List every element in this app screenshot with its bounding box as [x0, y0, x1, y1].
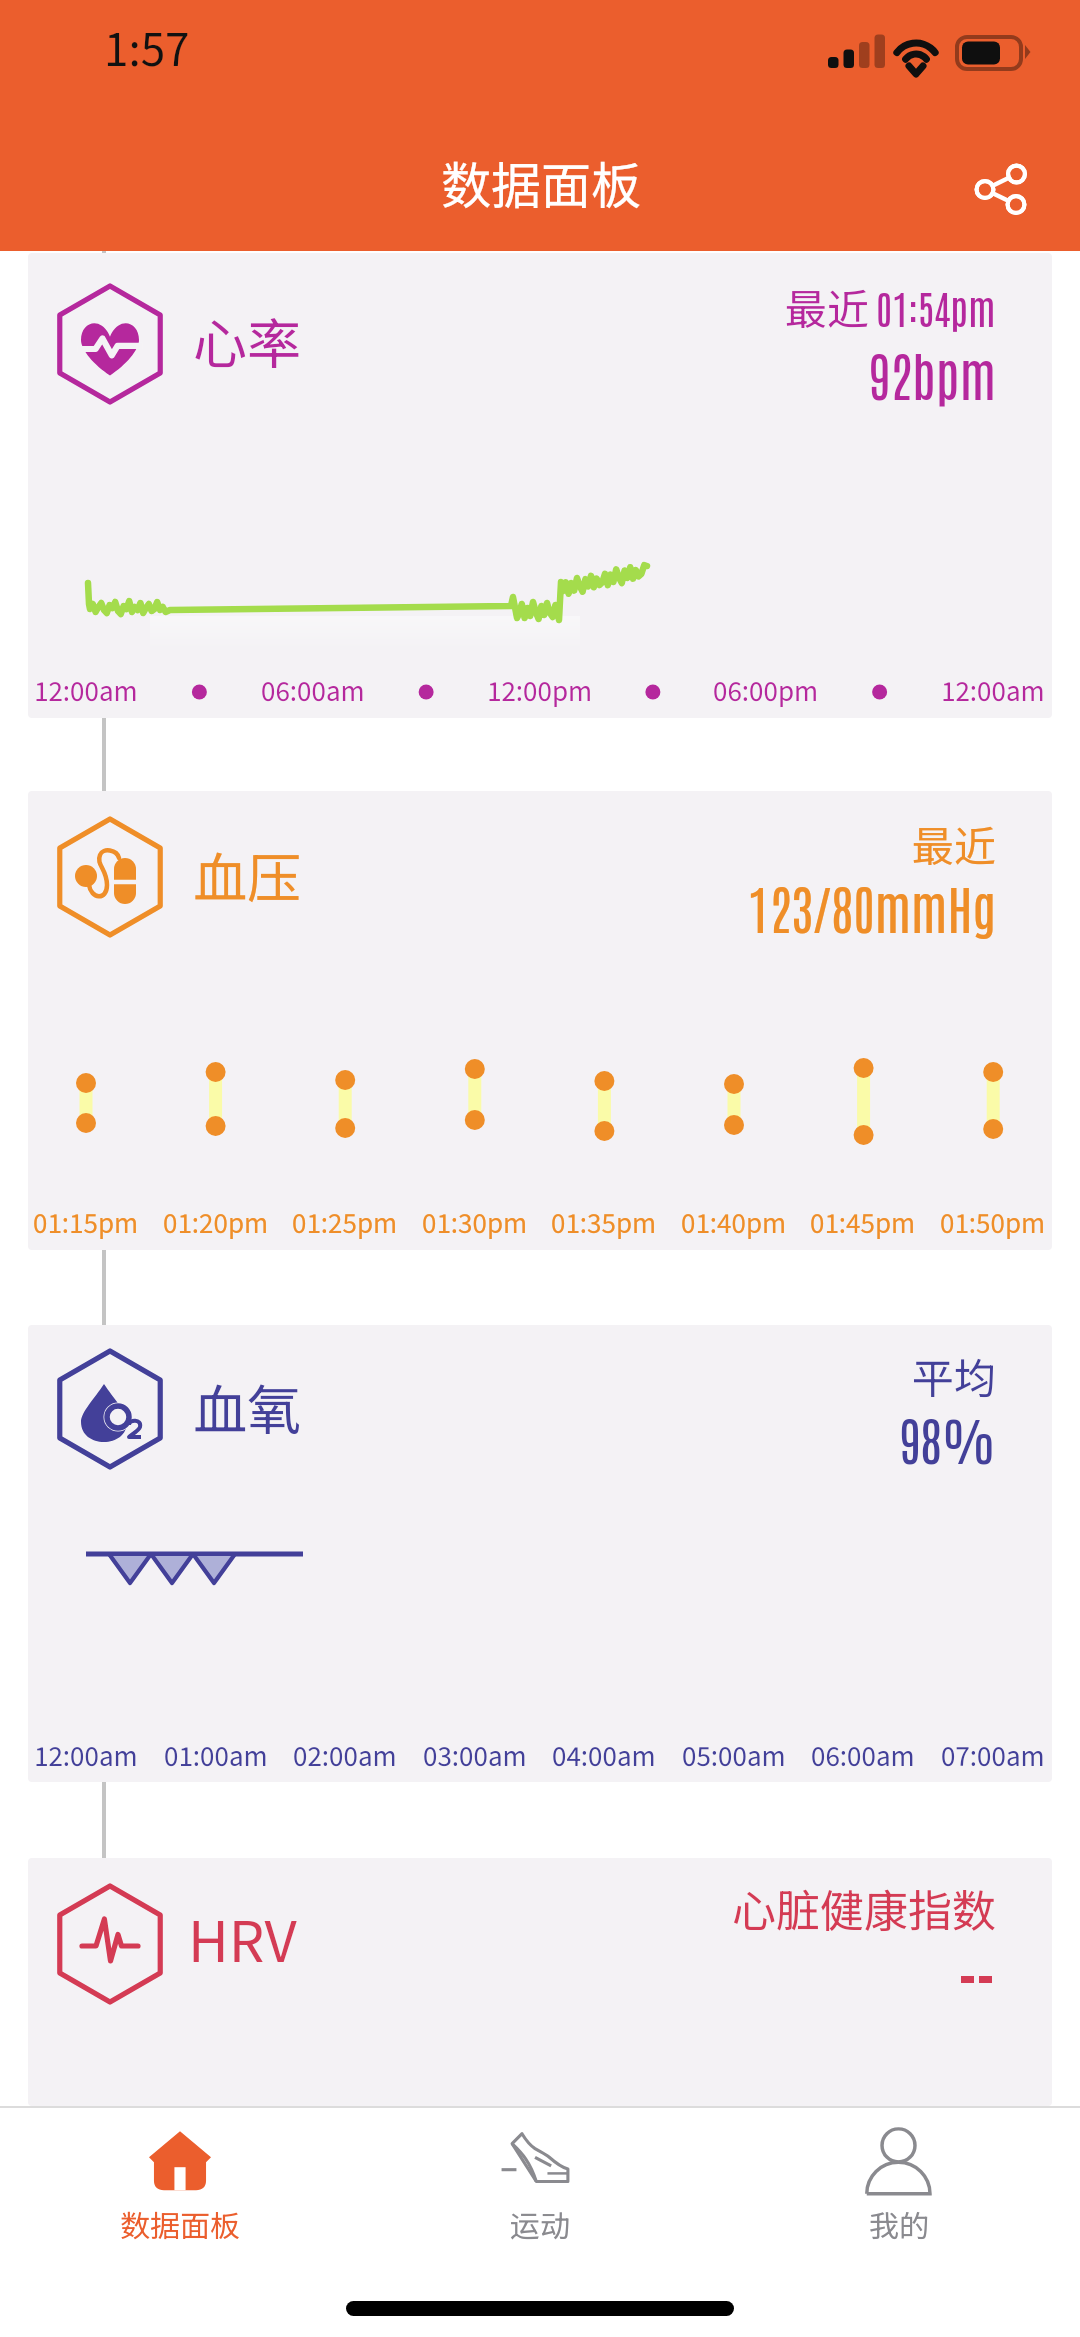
- staticText: 04:00am: [552, 1736, 656, 1774]
- staticText: 01:30pm: [422, 1203, 528, 1241]
- staticText: 03:00am: [423, 1736, 527, 1774]
- staticText: 07:00am: [941, 1736, 1045, 1774]
- staticText: 12:00am: [941, 671, 1045, 709]
- staticText: 01:00am: [164, 1736, 268, 1774]
- staticText: 平均: [396, 1345, 996, 1406]
- staticText: 12:00pm: [487, 671, 593, 709]
- staticText: 我的: [769, 2202, 1029, 2245]
- staticText: 02:00am: [293, 1736, 397, 1774]
- staticText: 心率: [193, 301, 301, 379]
- staticText: 01:15pm: [33, 1203, 139, 1241]
- staticText: 06:00am: [261, 671, 365, 709]
- staticText: 01:40pm: [681, 1203, 787, 1241]
- staticText: 06:00am: [811, 1736, 915, 1774]
- staticText: 1:57: [104, 15, 190, 79]
- staticText: HRV: [188, 1897, 297, 1978]
- staticText: 01:20pm: [163, 1203, 269, 1241]
- staticText: 最近: [396, 813, 996, 874]
- staticText: 01:50pm: [940, 1203, 1046, 1241]
- staticText: 运动: [410, 2202, 670, 2245]
- staticText: 01:54pm: [876, 282, 996, 332]
- staticText: 05:00am: [682, 1736, 786, 1774]
- staticText: 123/80mmHg: [396, 873, 996, 940]
- staticText: 01:25pm: [292, 1203, 398, 1241]
- button[interactable]: 心率: [28, 253, 1052, 718]
- staticText: 最近: [785, 276, 870, 337]
- button[interactable]: 运动: [410, 2114, 670, 2264]
- button[interactable]: HRV: [28, 1858, 1052, 2106]
- staticText: 01:45pm: [810, 1203, 916, 1241]
- staticText: 血压: [193, 835, 301, 913]
- staticText: 12:00am: [34, 671, 138, 709]
- button[interactable]: 血压: [28, 791, 1052, 1250]
- button[interactable]: 我的: [769, 2114, 1029, 2264]
- button[interactable]: 血氧: [28, 1325, 1052, 1782]
- staticText: 98%: [396, 1405, 996, 1471]
- button[interactable]: Share: [962, 155, 1038, 231]
- staticText: 01:35pm: [551, 1203, 657, 1241]
- staticText: 数据面板: [50, 2202, 310, 2245]
- staticText: 92bpm: [396, 340, 996, 407]
- staticText: 12:00am: [34, 1736, 138, 1774]
- staticText: 心脏健康指数: [396, 1876, 996, 1940]
- staticText: 06:00pm: [713, 671, 819, 709]
- button[interactable]: 数据面板: [50, 2114, 310, 2264]
- staticText: 血氧: [193, 1367, 301, 1445]
- staticText: 数据面板: [441, 146, 641, 218]
